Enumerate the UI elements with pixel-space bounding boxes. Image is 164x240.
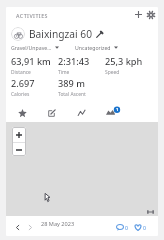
button[interactable]: Add activity [132,8,145,21]
staticText: 0 [143,224,146,231]
staticText: Baixingzai 60 [29,27,92,41]
staticText: Total Ascent [58,91,86,98]
staticText: ACTIVITIES [16,12,48,19]
button[interactable]: Gravel/Unpave... [10,44,59,51]
button[interactable]: 0 [116,224,128,231]
staticText: Time [58,69,70,76]
staticText: Uncategorized [75,44,111,51]
button[interactable]: Previous activity [11,221,23,233]
staticText: 25,3 kph [105,55,143,68]
staticText: 63,91 km [11,55,51,68]
staticText: 2:31:43 [58,55,90,68]
button[interactable]: Uncategorized [74,44,118,51]
staticText: Gravel/Unpave... [11,44,52,51]
button[interactable]: Next activity [24,221,36,233]
button[interactable]: Settings [144,8,157,21]
staticText: 28 May 2023 [41,220,75,228]
button[interactable]: Zoom in [12,127,26,142]
staticText: 389 m [58,77,85,90]
button[interactable]: Gear [104,106,122,119]
staticText: Speed [105,69,120,76]
button[interactable]: Favourite [16,107,28,119]
staticText: 0 [125,224,128,231]
button[interactable]: Analysis [76,107,88,119]
staticText: 2.697 [11,77,35,90]
button[interactable]: Edit activity [45,107,57,119]
staticText: Distance [11,69,31,76]
staticText: Calories [11,91,30,98]
staticText: 1 [116,107,119,113]
button[interactable]: Edit title [93,28,106,41]
button[interactable]: 0 [134,224,146,231]
button[interactable]: Zoom out [12,143,26,156]
